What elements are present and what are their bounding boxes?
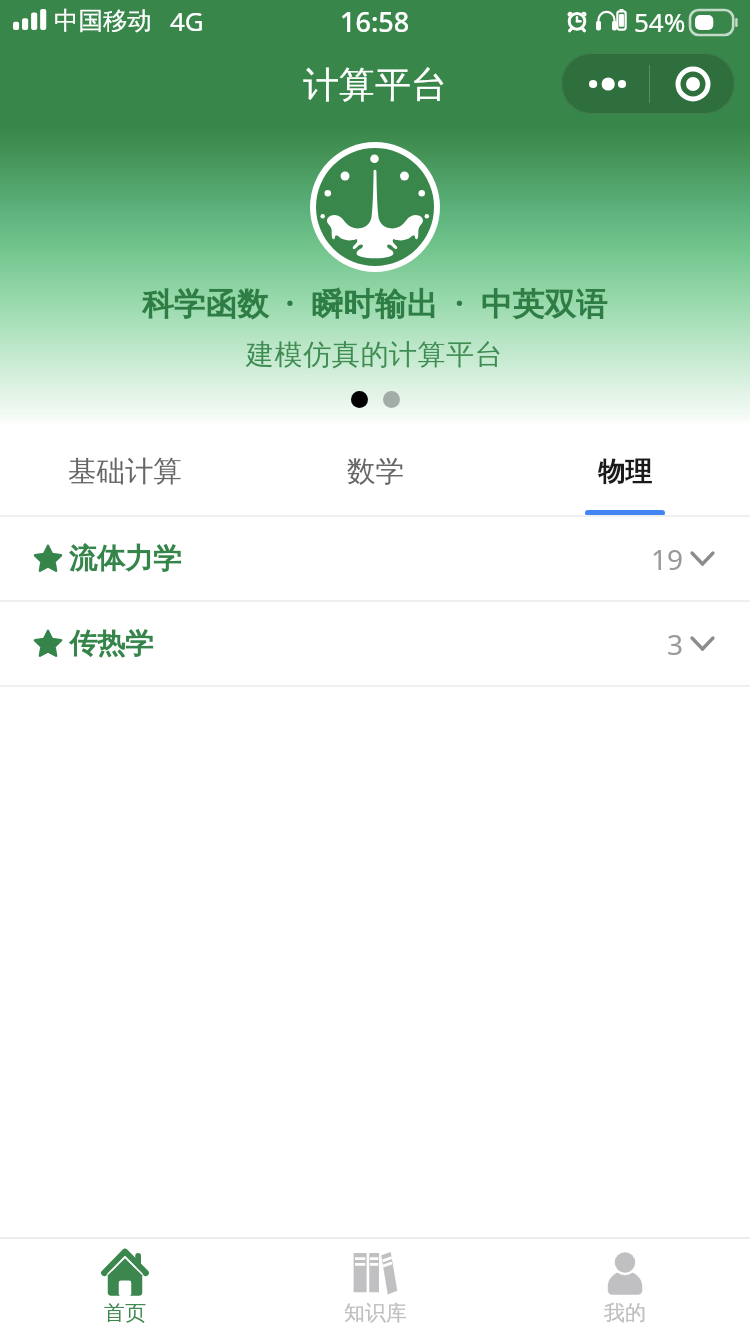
staticText: 物理 [598, 455, 652, 489]
staticText: 数学 [347, 454, 404, 490]
staticText: 我的 [604, 1300, 646, 1326]
staticText: 流体力学 [69, 541, 181, 576]
staticText: 传热学 [69, 626, 153, 661]
staticText: 知识库 [344, 1300, 407, 1326]
staticText: 基础计算 [68, 454, 182, 490]
button[interactable]: 基础计算 [0, 425, 250, 517]
button[interactable]: 物理 [500, 425, 750, 517]
button[interactable]: Close mini program [650, 53, 735, 114]
staticText: 建模仿真的计算平台 [246, 337, 504, 372]
staticText: 首页 [104, 1300, 146, 1326]
staticText: 中国移动 [54, 5, 152, 36]
button[interactable]: 知识库 [250, 1239, 500, 1334]
button[interactable]: 首页 [0, 1239, 250, 1334]
button[interactable]: More options [561, 53, 649, 114]
staticText: 54% [634, 4, 686, 39]
staticText: 科学函数 · 瞬时输出 · 中英双语 [142, 281, 608, 324]
button[interactable]: 我的 [500, 1239, 750, 1334]
staticText: 16:58 [340, 3, 410, 40]
button[interactable]: 数学 [250, 425, 500, 517]
staticText: 19 [651, 540, 684, 578]
staticText: 4G [170, 3, 204, 38]
staticText: 计算平台 [303, 62, 447, 107]
button[interactable]: 流体力学 [0, 517, 750, 600]
button[interactable]: 传热学 [0, 602, 750, 685]
staticText: 3 [667, 625, 684, 663]
